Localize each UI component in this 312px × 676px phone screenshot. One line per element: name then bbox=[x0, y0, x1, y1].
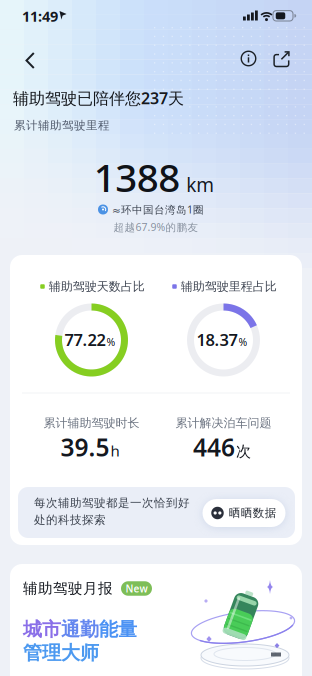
staticText: 辅助驾驶里程占比 bbox=[181, 279, 277, 294]
staticText: 11:49 bbox=[22, 7, 58, 25]
staticText: 管理大师 bbox=[23, 642, 99, 664]
staticText: 累计辅助驾驶时长 bbox=[43, 416, 139, 430]
staticText: 累计解决泊车问题 bbox=[175, 416, 271, 430]
staticText: 处的科技探索 bbox=[34, 513, 106, 527]
staticText: % bbox=[238, 335, 247, 349]
button[interactable]: Share bbox=[270, 49, 293, 70]
staticText: % bbox=[106, 335, 115, 349]
staticText: 1388 bbox=[94, 152, 180, 202]
staticText: 辅助驾驶月报 bbox=[23, 580, 113, 597]
staticText: 通勤 bbox=[61, 618, 99, 641]
staticText: h bbox=[110, 441, 119, 460]
staticText: 77.22 bbox=[64, 329, 105, 350]
staticText: 超越67.9%的鹏友 bbox=[113, 220, 198, 234]
staticText: 城市 bbox=[23, 618, 61, 641]
staticText: ≈环中国台湾岛1圈 bbox=[112, 203, 204, 216]
staticText: 辅助驾驶已陪伴您237天 bbox=[13, 88, 184, 108]
staticText: 18.37 bbox=[196, 329, 237, 350]
staticText: 累计辅助驾驶里程 bbox=[14, 119, 110, 132]
staticText: 每次辅助驾驶都是一次恰到好 bbox=[34, 496, 190, 510]
button[interactable]: 晒晒数据 bbox=[202, 499, 285, 527]
button[interactable]: Info bbox=[234, 47, 263, 69]
staticText: 446 bbox=[193, 431, 235, 463]
staticText: 辅助驾驶天数占比 bbox=[49, 279, 145, 294]
staticText: 次 bbox=[236, 442, 251, 460]
staticText: 39.5 bbox=[60, 431, 109, 463]
staticText: km bbox=[186, 172, 214, 197]
staticText: 晒晒数据 bbox=[229, 506, 277, 520]
button[interactable]: Back bbox=[14, 46, 46, 74]
staticText: New bbox=[125, 582, 147, 595]
staticText: 能量 bbox=[99, 618, 137, 641]
